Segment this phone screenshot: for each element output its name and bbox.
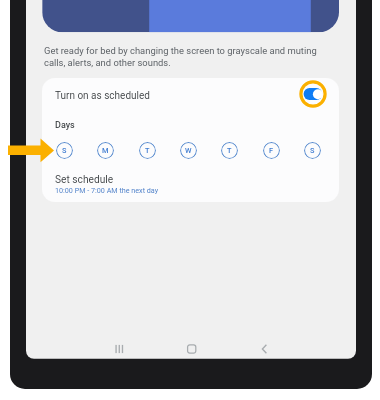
- staticText: Days: [55, 120, 75, 131]
- button[interactable]: T: [139, 142, 156, 159]
- button[interactable]: T: [221, 142, 238, 159]
- staticText: T: [227, 146, 232, 155]
- staticText: T: [145, 146, 150, 155]
- staticText: F: [269, 146, 274, 155]
- button[interactable]: S: [304, 142, 321, 159]
- staticText: S: [310, 146, 315, 155]
- staticText: 10:00 PM - 7:00 AM the next day: [55, 186, 159, 194]
- staticText: Turn on as scheduled: [55, 90, 150, 102]
- button[interactable]: Set schedule: [42, 172, 339, 202]
- staticText: S: [62, 146, 67, 155]
- staticText: Get ready for bed by changing the screen…: [44, 45, 320, 68]
- button[interactable]: M: [97, 142, 114, 159]
- button[interactable]: W: [180, 142, 197, 159]
- button[interactable]: Recent apps: [105, 340, 129, 358]
- button[interactable]: Home: [179, 340, 203, 358]
- button[interactable]: Turn on as scheduled toggle: [295, 76, 331, 112]
- button[interactable]: F: [263, 142, 280, 159]
- staticText: M: [102, 146, 109, 155]
- button[interactable]: Back: [252, 340, 276, 358]
- button[interactable]: S: [56, 142, 73, 159]
- staticText: W: [185, 146, 192, 155]
- staticText: Set schedule: [55, 174, 114, 186]
- button[interactable]: Turn on as scheduled: [42, 78, 339, 120]
